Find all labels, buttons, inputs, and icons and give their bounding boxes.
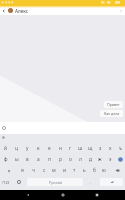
button[interactable]: д: [85, 154, 95, 165]
staticText: х: [109, 145, 112, 152]
staticText: е: [48, 145, 51, 152]
button[interactable]: Emoji: [0, 124, 8, 132]
button[interactable]: т: [69, 165, 79, 176]
staticText: п: [48, 156, 51, 163]
staticText: к: [37, 145, 40, 152]
staticText: д: [89, 156, 92, 163]
button[interactable]: ш: [75, 143, 85, 154]
button[interactable]: Back: [22, 190, 34, 200]
button[interactable]: и: [59, 165, 69, 176]
staticText: Алекс: [15, 8, 29, 14]
staticText: з: [99, 145, 102, 152]
staticText: т: [73, 167, 76, 174]
button[interactable]: б: [89, 165, 99, 176]
staticText: э: [109, 156, 112, 163]
staticText: .: [90, 180, 92, 185]
button[interactable]: Emoji: [12, 176, 26, 188]
button[interactable]: ъ: [115, 143, 125, 154]
button[interactable]: х: [105, 143, 115, 154]
staticText: Как дела: [104, 111, 120, 116]
button[interactable]: в: [22, 154, 33, 165]
staticText: и: [63, 167, 66, 174]
button[interactable]: р: [55, 154, 65, 165]
button[interactable]: о: [65, 154, 75, 165]
button[interactable]: Keyboard settings: [0, 134, 7, 141]
staticText: б: [93, 167, 96, 174]
staticText: ?123: [2, 180, 10, 185]
staticText: м: [52, 167, 56, 174]
staticText: ч: [32, 167, 35, 174]
button[interactable]: ч: [28, 165, 39, 176]
button[interactable]: м: [49, 165, 59, 176]
button[interactable]: Enter: [100, 178, 123, 186]
button[interactable]: Shift: [0, 165, 17, 176]
button[interactable]: ь: [79, 165, 89, 176]
button[interactable]: ф: [0, 154, 11, 165]
button[interactable]: к: [33, 143, 44, 154]
button[interactable]: я: [17, 165, 28, 176]
button[interactable]: л: [75, 154, 85, 165]
button[interactable]: Symbols: [0, 176, 12, 188]
staticText: Привет: [107, 102, 120, 107]
staticText: щ: [88, 145, 93, 152]
staticText: ф: [4, 156, 8, 163]
button[interactable]: Привет: [104, 101, 123, 108]
button[interactable]: More options: [117, 6, 125, 15]
staticText: ц: [15, 145, 18, 152]
staticText: ъ: [119, 145, 122, 152]
button[interactable]: Space: [27, 178, 83, 186]
staticText: ю: [102, 167, 106, 174]
staticText: л: [79, 156, 82, 163]
button[interactable]: ц: [11, 143, 22, 154]
button[interactable]: Recent apps: [91, 190, 103, 200]
button[interactable]: с: [39, 165, 49, 176]
button[interactable]: ы: [11, 154, 22, 165]
button[interactable]: у: [22, 143, 33, 154]
button[interactable]: е: [44, 143, 55, 154]
button[interactable]: й: [0, 143, 11, 154]
staticText: с: [43, 167, 46, 174]
button[interactable]: Contact avatar: [8, 8, 13, 13]
button[interactable]: ю: [99, 165, 109, 176]
button[interactable]: Back: [0, 6, 8, 15]
button[interactable]: Backspace: [109, 165, 125, 176]
button[interactable]: з: [95, 143, 105, 154]
staticText: й: [4, 145, 7, 152]
staticText: р: [59, 156, 62, 163]
button[interactable]: э: [105, 154, 115, 165]
button[interactable]: Home: [57, 190, 69, 200]
staticText: я: [21, 167, 24, 174]
staticText: ь: [83, 167, 86, 174]
staticText: н: [59, 145, 62, 152]
button[interactable]: н: [55, 143, 65, 154]
staticText: ж: [98, 156, 102, 163]
staticText: г: [69, 145, 72, 152]
staticText: в: [26, 156, 29, 163]
staticText: ы: [15, 156, 19, 163]
staticText: ш: [78, 145, 83, 152]
button[interactable]: п: [44, 154, 55, 165]
staticText: у: [26, 145, 29, 152]
staticText: Русский: [49, 180, 62, 185]
staticText: а: [37, 156, 40, 163]
staticText: о: [69, 156, 72, 163]
button[interactable]: а: [33, 154, 44, 165]
button[interactable]: ж: [95, 154, 105, 165]
button[interactable]: Как дела: [100, 110, 123, 117]
button[interactable]: г: [65, 143, 75, 154]
button[interactable]: щ: [85, 143, 95, 154]
